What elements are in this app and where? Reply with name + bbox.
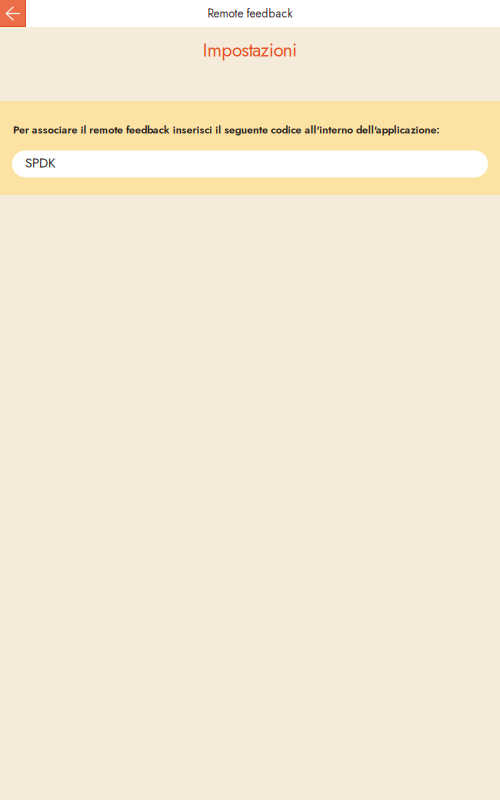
- staticText: Impostazioni: [203, 36, 297, 63]
- staticText: Remote feedback: [207, 5, 292, 22]
- staticText: SPDK: [25, 153, 56, 173]
- button[interactable]: Pairing code SPDK: [0, 137, 500, 177]
- staticText: Per associare il remote feedback inseris…: [13, 122, 439, 137]
- button[interactable]: Back: [0, 0, 26, 27]
